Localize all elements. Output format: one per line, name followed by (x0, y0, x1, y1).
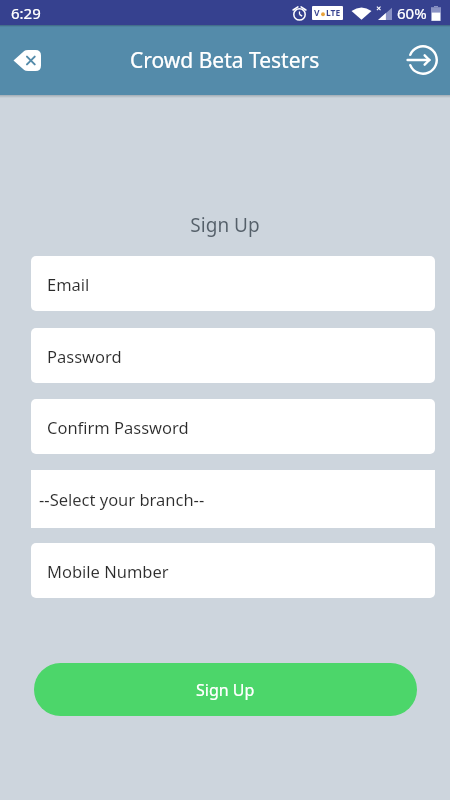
staticText: 60% (397, 3, 427, 23)
staticText: Password (47, 345, 122, 367)
button[interactable]: Sign in (400, 37, 446, 83)
staticText: Confirm Password (47, 416, 189, 438)
button[interactable]: Sign Up (34, 663, 417, 716)
staticText: Sign Up (0, 212, 450, 238)
staticText: Crowd Beta Testers (130, 46, 320, 75)
staticText: --Select your branch-- (39, 488, 205, 510)
staticText: Mobile Number (47, 560, 169, 582)
staticText: Email (47, 273, 90, 295)
staticText: 6:29 (11, 3, 41, 23)
button[interactable]: Back (3, 37, 49, 83)
staticText: V (314, 7, 320, 19)
button[interactable]: --Select your branch-- (31, 470, 435, 528)
button[interactable]: Password (31, 328, 435, 383)
button[interactable]: Confirm Password (31, 399, 435, 454)
staticText: LTE (326, 7, 341, 19)
button[interactable]: Email (31, 256, 435, 311)
staticText: Sign Up (196, 679, 255, 701)
button[interactable]: Mobile Number (31, 543, 435, 598)
